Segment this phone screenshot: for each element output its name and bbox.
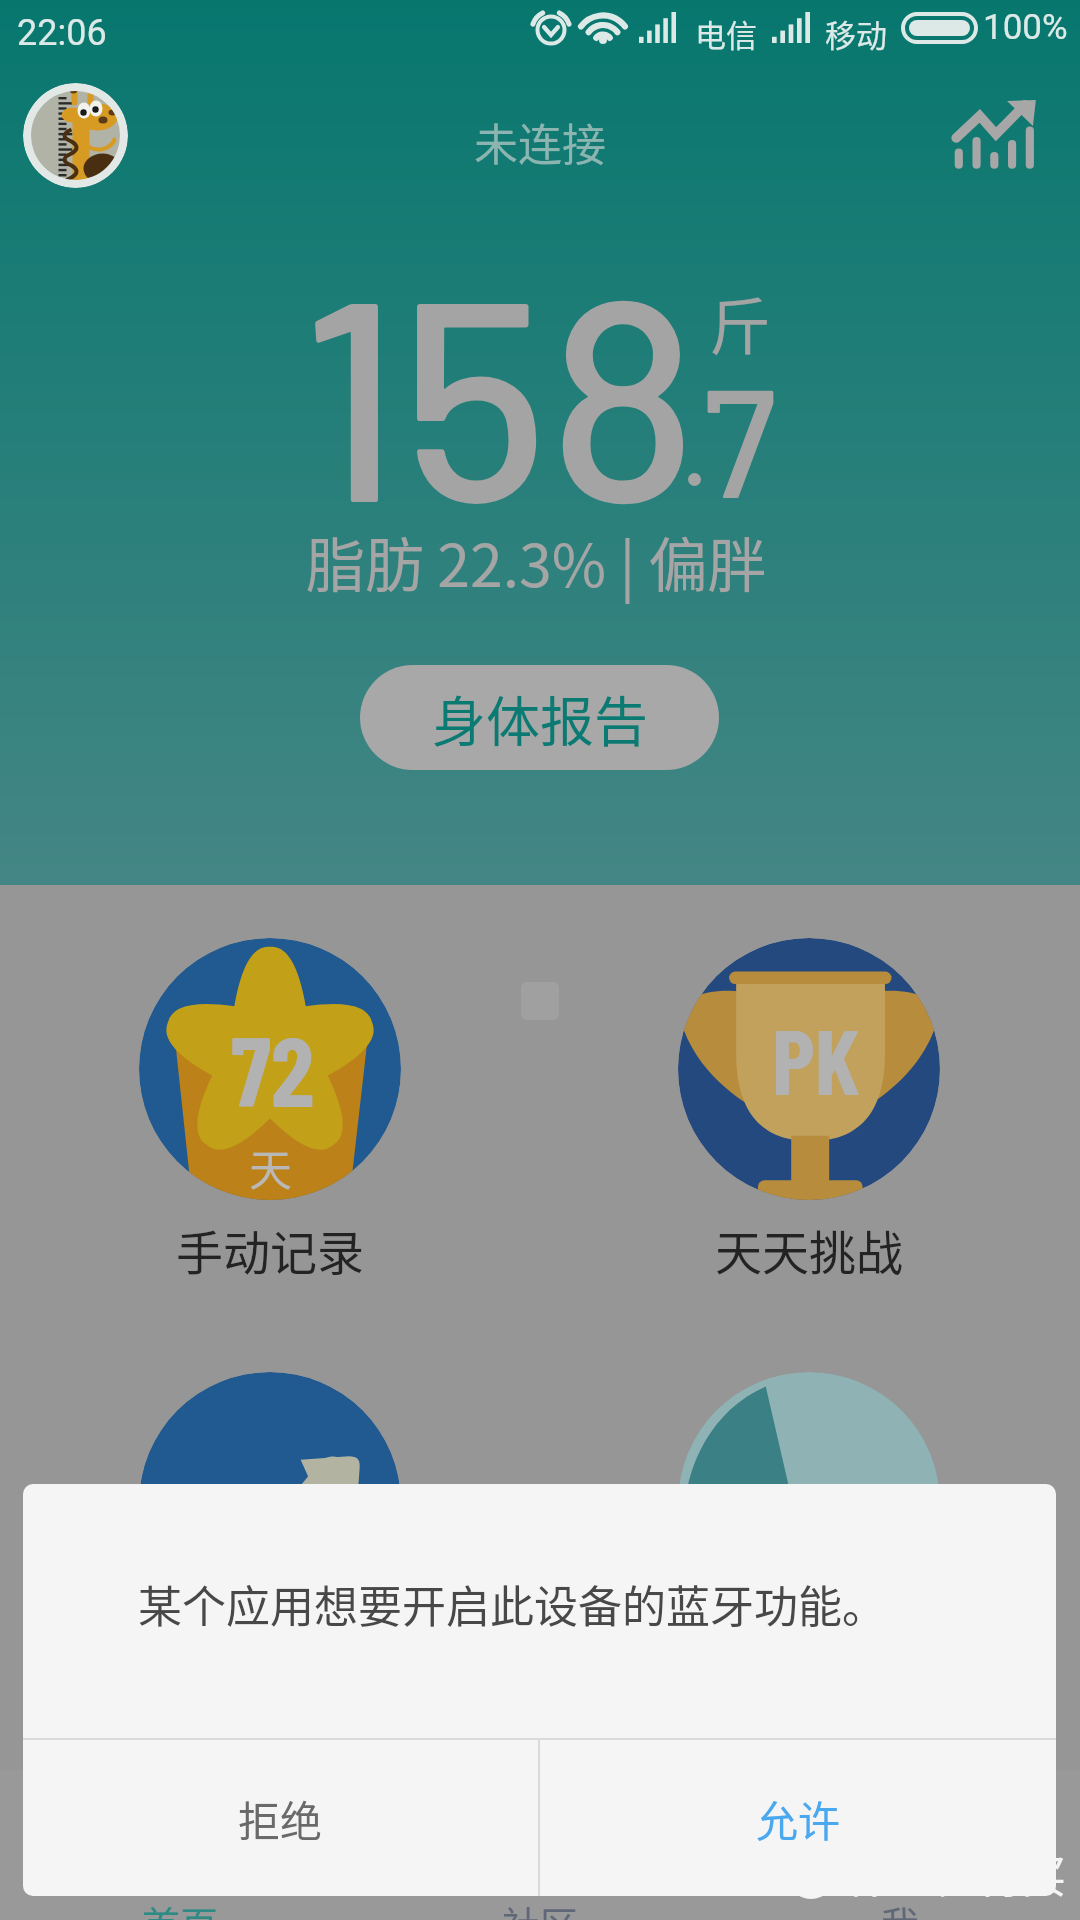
staticText: 我 (881, 1895, 920, 1920)
staticText: 未连接 (474, 110, 606, 174)
staticText: 天 (249, 1136, 292, 1198)
staticText: 拒绝 (238, 1788, 323, 1849)
staticText: 身体报告 (432, 679, 648, 757)
staticText: 斤 (709, 278, 772, 368)
staticText: 天天挑战 (715, 1215, 903, 1283)
button[interactable]: Profile (23, 83, 128, 188)
staticText: 22:06 (17, 12, 107, 54)
staticText: 允许 (756, 1788, 841, 1849)
staticText: 电信 (695, 11, 757, 56)
staticText: 100% (983, 7, 1068, 48)
staticText: 脂肪 22.3% | 偏胖 (306, 519, 767, 604)
staticText: 72 (231, 1009, 314, 1127)
button[interactable]: 我 (720, 1770, 1080, 1920)
button[interactable]: Trend chart (948, 90, 1044, 186)
staticText: 158 (301, 219, 698, 559)
button[interactable]: Trend (98, 1354, 442, 1718)
button[interactable]: 社区 (360, 1770, 720, 1920)
button[interactable]: 允许 (540, 1740, 1056, 1896)
staticText: 首页 (142, 1895, 219, 1920)
staticText: PK (772, 1003, 860, 1113)
button[interactable]: Food (637, 1354, 981, 1718)
button[interactable]: 首页 (0, 1770, 360, 1920)
button[interactable]: Daily challenge (637, 920, 981, 1284)
staticText: 移动 (825, 11, 887, 56)
staticText: 手动记录 (176, 1215, 364, 1283)
staticText: 社区 (502, 1895, 579, 1920)
staticText: 某个应用想要开启此设备的蓝牙功能。 (138, 1572, 886, 1636)
button[interactable]: 拒绝 (23, 1740, 538, 1896)
staticText: 什么值得买 (846, 1842, 1066, 1906)
staticText: 值 (794, 1850, 828, 1899)
button[interactable]: Manual record (98, 920, 442, 1284)
button[interactable]: 身体报告 (360, 665, 719, 770)
staticText: 7 (703, 346, 777, 528)
